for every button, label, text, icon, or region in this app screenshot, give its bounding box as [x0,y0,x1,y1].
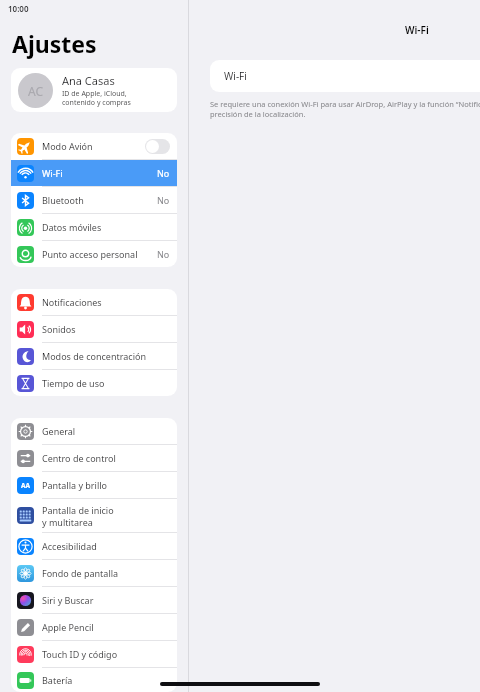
button[interactable]: Touch ID y código [11,641,177,667]
button[interactable]: Modo Avión [145,139,170,154]
staticText: Modos de concentración [42,350,146,362]
button[interactable]: Tiempo de uso [11,370,177,396]
staticText: Tiempo de uso [42,377,105,389]
staticText: Wi-Fi [42,167,63,179]
button[interactable]: AC [11,68,177,112]
staticText: No [157,167,170,179]
staticText: Ajustes [12,28,97,59]
staticText: Centro de control [42,452,116,464]
staticText: Pantalla de inicio [42,504,114,516]
staticText: y multitarea [42,516,93,528]
staticText: General [42,425,76,437]
button[interactable]: Wi-Fi [11,160,177,186]
button[interactable]: Accesibilidad [11,533,177,559]
staticText: No [157,194,170,206]
staticText: Punto acceso personal [42,248,138,260]
staticText: Notificaciones [42,296,102,308]
staticText: Se requiere una conexión Wi-Fi para usar… [210,99,480,119]
staticText: Wi-Fi [405,23,429,37]
staticText: Batería [42,674,73,686]
button[interactable]: AA [11,472,177,498]
staticText: Modo Avión [42,140,93,152]
staticText: Siri y Buscar [42,594,94,606]
button[interactable]: Modos de concentración [11,343,177,369]
staticText: Fondo de pantalla [42,567,119,579]
button[interactable]: Modo Avión [11,133,177,159]
button[interactable]: Datos móviles [11,214,177,240]
button[interactable]: Fondo de pantalla [11,560,177,586]
staticText: ID de Apple, iCloud, contenido y compras [62,89,131,107]
staticText: Pantalla y brillo [42,479,107,491]
button[interactable]: Pantalla de inicio [11,499,177,532]
button[interactable]: Bluetooth [11,187,177,213]
staticText: Apple Pencil [42,621,94,633]
button[interactable]: Notificaciones [11,289,177,315]
staticText: No [157,248,170,260]
button[interactable]: Siri y Buscar [11,587,177,613]
staticText: Accesibilidad [42,540,97,552]
staticText: Sonidos [42,323,76,335]
staticText: AA [21,481,30,490]
button[interactable]: Apple Pencil [11,614,177,640]
button[interactable]: General [11,418,177,444]
staticText: AC [28,83,44,99]
button[interactable]: Wi-Fi [210,60,480,92]
button[interactable]: Punto acceso personal [11,241,177,267]
staticText: Datos móviles [42,221,102,233]
button[interactable]: Batería [11,668,177,692]
staticText: Touch ID y código [42,648,118,660]
staticText: Wi-Fi [224,69,247,83]
staticText: Ana Casas [62,73,115,88]
staticText: Bluetooth [42,194,84,206]
staticText: 10:00 [8,3,29,14]
button[interactable]: Sonidos [11,316,177,342]
button[interactable]: Centro de control [11,445,177,471]
